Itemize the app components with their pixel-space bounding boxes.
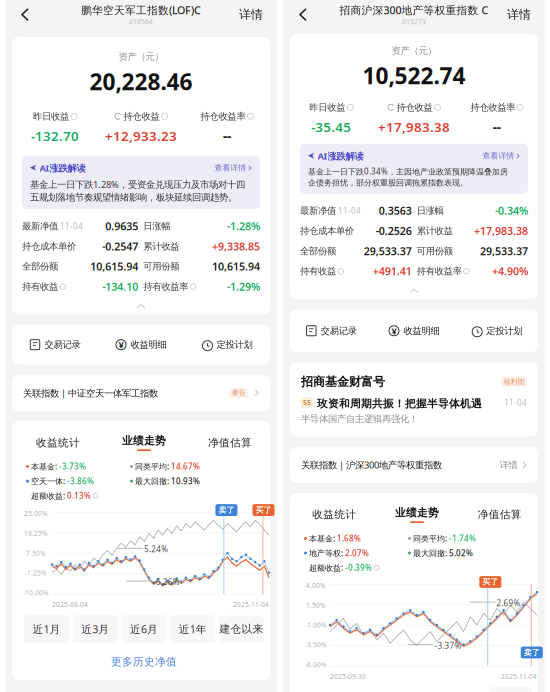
button[interactable]: 查看详情 bbox=[214, 163, 252, 173]
staticText: 累计收益 bbox=[143, 241, 179, 252]
staticText: 同类平均: bbox=[413, 533, 447, 544]
staticText: 业绩走势 bbox=[395, 506, 439, 519]
staticText: 55 bbox=[303, 398, 311, 407]
button[interactable]: 近1月 bbox=[24, 615, 69, 643]
staticText: 鹏华空天军工指数(LOF)C bbox=[81, 3, 201, 17]
staticText: 查看详情 bbox=[482, 151, 514, 161]
staticText: 昨日收益 bbox=[309, 102, 345, 113]
button[interactable]: 招商基金财富号 bbox=[290, 362, 538, 437]
staticText: 收益统计 bbox=[36, 436, 80, 449]
staticText: 定投计划 bbox=[216, 339, 252, 350]
staticText: +491.41 bbox=[373, 264, 412, 278]
button[interactable]: Back bbox=[5, 2, 39, 27]
staticText: ¥ bbox=[391, 325, 396, 337]
staticText: 最新净值 bbox=[300, 205, 336, 216]
button[interactable]: 业绩走势 bbox=[376, 506, 458, 523]
button[interactable]: 查看详情 bbox=[482, 151, 520, 161]
staticText: 业绩走势 bbox=[122, 434, 166, 447]
staticText: 收益明细 bbox=[403, 325, 439, 337]
staticText: 持仓收益率 bbox=[200, 111, 245, 122]
button[interactable]: 定投计划 bbox=[184, 325, 270, 365]
staticText: 查看详情 bbox=[214, 163, 246, 173]
button[interactable]: 定投计划 bbox=[455, 309, 538, 352]
staticText: -3.37% bbox=[434, 640, 461, 651]
staticText: 空天一体: bbox=[31, 476, 65, 486]
staticText: 持有收益 bbox=[300, 265, 336, 277]
button[interactable]: 净值估算 bbox=[458, 506, 541, 523]
button[interactable]: 收益统计 bbox=[293, 506, 376, 523]
button[interactable]: 交易记录 bbox=[12, 325, 98, 364]
staticText: 近1月 bbox=[32, 622, 60, 636]
staticText: -1.00% bbox=[305, 620, 327, 629]
staticText: 10,522.74 bbox=[362, 60, 465, 91]
staticText: 29,533.37 bbox=[480, 244, 528, 258]
staticText: 详情 bbox=[239, 7, 263, 22]
button[interactable]: ¥ bbox=[98, 325, 184, 364]
staticText: 福利团 bbox=[503, 378, 524, 386]
button[interactable]: 近1年 bbox=[170, 615, 215, 643]
staticText: 11-04 bbox=[504, 397, 527, 408]
button[interactable]: 净值估算 bbox=[187, 434, 273, 451]
staticText: -1.74% bbox=[449, 533, 476, 544]
staticText: -0.39% bbox=[345, 562, 372, 573]
staticText: 五规划落地节奏观望情绪影响，板块延续回调趋势。 bbox=[30, 192, 237, 203]
staticText: -35.45 bbox=[311, 118, 351, 136]
staticText: -3.86% bbox=[67, 476, 94, 486]
staticText: 买了 bbox=[255, 505, 271, 515]
button[interactable]: Back bbox=[283, 2, 317, 27]
staticText: +4.90% bbox=[492, 264, 528, 278]
staticText: 2.07% bbox=[345, 548, 369, 558]
button[interactable]: 关联指数 | 沪深300地产等权重指数 bbox=[290, 447, 538, 483]
staticText: -0.2547 bbox=[102, 239, 138, 253]
staticText: 基金上一日下跌0.34%，主因地产业政策预期降温叠加房 bbox=[308, 166, 508, 177]
button[interactable]: ¥ bbox=[373, 310, 455, 352]
staticText: 关联指数 | 沪深300地产等权重指数 bbox=[301, 459, 442, 471]
staticText: 卖了 bbox=[524, 648, 540, 657]
staticText: 10,615.94 bbox=[212, 259, 260, 274]
button[interactable]: 业绩走势 bbox=[101, 434, 187, 451]
staticText: -1.25% bbox=[25, 568, 47, 577]
staticText: 详情 bbox=[499, 459, 517, 471]
button[interactable]: 建仓以来 bbox=[219, 615, 264, 643]
staticText: -10.00% bbox=[23, 588, 49, 597]
staticText: 015273 bbox=[402, 17, 426, 26]
button[interactable]: 详情 bbox=[493, 0, 545, 29]
staticText: 2025-08-04 bbox=[52, 600, 88, 609]
button[interactable]: 交易记录 bbox=[290, 310, 373, 352]
staticText: 日涨幅 bbox=[417, 205, 444, 216]
staticText: 买了 bbox=[482, 577, 498, 587]
staticText: 定投计划 bbox=[486, 325, 522, 337]
button[interactable]: 收益统计 bbox=[15, 434, 101, 451]
staticText: 近3月 bbox=[81, 622, 109, 636]
staticText: 建仓以来 bbox=[220, 622, 264, 636]
staticText: 5.24% bbox=[144, 544, 168, 554]
staticText: 持仓成本单价 bbox=[22, 241, 76, 252]
staticText: AI涨跌解读 bbox=[39, 162, 85, 174]
staticText: 持有收益 bbox=[22, 281, 58, 292]
staticText: 2025-11-04 bbox=[501, 672, 537, 681]
button[interactable]: 关联指数 | 中证空天一体军工指数 bbox=[12, 375, 270, 411]
staticText: 超额收益: bbox=[31, 490, 65, 501]
staticText: 累计收益 bbox=[417, 225, 453, 237]
button[interactable]: 近6月 bbox=[122, 615, 166, 643]
staticText: 昨日收益 bbox=[33, 111, 69, 122]
staticText: 25.00% bbox=[24, 509, 48, 518]
staticText: +9,338.85 bbox=[212, 239, 260, 253]
staticText: 最大回撤: bbox=[135, 476, 169, 486]
staticText: 同类平均: bbox=[135, 461, 169, 472]
button[interactable]: 更多历史净值 bbox=[15, 643, 273, 680]
button[interactable]: 近3月 bbox=[73, 615, 118, 643]
staticText: 交易记录 bbox=[44, 339, 80, 350]
staticText: 超额收益: bbox=[309, 562, 343, 573]
staticText: 地产等权: bbox=[309, 548, 343, 558]
staticText: 日涨幅 bbox=[143, 220, 170, 232]
staticText: 持仓成本单价 bbox=[300, 225, 354, 237]
staticText: 全部份额 bbox=[22, 261, 58, 272]
staticText: 010564 bbox=[129, 17, 153, 26]
button[interactable]: 详情 bbox=[225, 0, 277, 29]
staticText: 0.3563 bbox=[379, 204, 412, 218]
staticText: 本基金: bbox=[31, 461, 57, 472]
